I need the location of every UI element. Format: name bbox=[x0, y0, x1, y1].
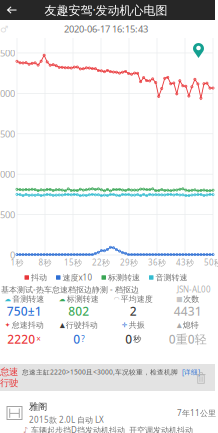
staticText: 29秒 bbox=[120, 257, 138, 268]
staticText: 秒 bbox=[133, 334, 141, 344]
staticText: 平均速度 bbox=[121, 294, 153, 304]
staticText: 2015款 2.0L 自动 LX bbox=[29, 414, 104, 425]
staticText: 怠速抖动 bbox=[12, 320, 44, 330]
staticText: 22秒 bbox=[92, 257, 110, 268]
staticText: 2 bbox=[130, 303, 137, 319]
staticText: 36秒 bbox=[148, 257, 166, 268]
staticText: 雅阁 bbox=[29, 401, 47, 412]
staticText: 共振 bbox=[129, 320, 145, 330]
staticText: ♪ bbox=[23, 425, 28, 433]
staticText: 802 bbox=[68, 303, 89, 319]
staticText: 43秒 bbox=[176, 257, 194, 268]
staticText: 友趣安驾·发动机心电图 bbox=[44, 2, 167, 18]
staticText: 怠速主缸2220>1500且<3000,车况较重，检查机脚 bbox=[22, 368, 178, 376]
button[interactable]: ▲ bbox=[51, 320, 106, 330]
staticText: 0重0轻 bbox=[169, 331, 207, 347]
staticText: 抖动 bbox=[31, 273, 47, 282]
staticText: 2000 bbox=[0, 87, 15, 100]
staticText: 1秒 bbox=[10, 257, 23, 268]
staticText: ☁ bbox=[59, 295, 66, 303]
staticText: 8秒 bbox=[38, 257, 51, 268]
button[interactable]: Delete bbox=[191, 366, 211, 390]
staticText: 4431 bbox=[174, 303, 202, 319]
staticText: 速度x10 bbox=[62, 272, 92, 283]
button[interactable]: [详细] bbox=[182, 368, 200, 376]
staticText: 2220 bbox=[7, 331, 35, 347]
staticText: 0 bbox=[125, 331, 132, 347]
staticText: 0 bbox=[10, 249, 15, 261]
staticText: 2020-06-17 16:15:43 bbox=[64, 23, 148, 35]
staticText: ? bbox=[81, 334, 84, 344]
button[interactable]: ☁ bbox=[51, 294, 106, 304]
staticText: 750±1 bbox=[7, 303, 42, 319]
staticText: 0 bbox=[73, 331, 80, 347]
button[interactable]: ▲ bbox=[160, 320, 215, 330]
staticText: [详细] bbox=[182, 368, 200, 376]
button[interactable]: ✦ bbox=[0, 320, 51, 330]
staticText: 2500 bbox=[0, 47, 15, 59]
staticText: × bbox=[36, 334, 41, 344]
staticText: 基本测试-热车怠速档抠边静测 - 档抠边 bbox=[1, 284, 139, 295]
staticText: ▲ bbox=[60, 321, 65, 329]
staticText: 15秒 bbox=[64, 257, 82, 268]
staticText: ▲ bbox=[177, 321, 182, 329]
staticText: 标测转速 bbox=[108, 273, 140, 282]
button[interactable]: Back bbox=[0, 0, 27, 20]
staticText: ▦ bbox=[176, 295, 182, 303]
button[interactable]: 雅阁 bbox=[6, 401, 216, 425]
staticText: ✦ bbox=[5, 321, 11, 329]
staticText: 音测转速 bbox=[155, 273, 187, 282]
staticText: ☁ bbox=[4, 295, 11, 303]
staticText: 50秒 bbox=[204, 257, 218, 268]
staticText: JSN-AL00 bbox=[177, 284, 211, 295]
staticText: ◠ bbox=[114, 295, 120, 303]
staticText: 500 bbox=[0, 208, 15, 221]
staticText: 行驶 bbox=[0, 377, 18, 389]
staticText: ♂ bbox=[0, 24, 8, 35]
button[interactable]: ◠ bbox=[106, 294, 160, 304]
button[interactable]: ✛ bbox=[106, 320, 160, 330]
staticText: 7年11公里 bbox=[177, 408, 216, 418]
staticText: 车辆起步挡D挡发动机抖动 开空调发动机抖动 bbox=[31, 425, 193, 433]
button[interactable]: ☁ bbox=[0, 294, 51, 304]
staticText: 行驶抖动 bbox=[66, 320, 98, 330]
staticText: 1000 bbox=[0, 168, 15, 180]
staticText: 标测转速 bbox=[67, 294, 99, 304]
staticText: 次数 bbox=[183, 294, 199, 304]
staticText: ✛ bbox=[122, 321, 128, 329]
staticText: 1500 bbox=[0, 128, 15, 140]
staticText: 音测转速 bbox=[12, 294, 44, 304]
staticText: 怠速 bbox=[0, 366, 18, 378]
staticText: 熄特 bbox=[183, 320, 199, 330]
button[interactable]: ▦ bbox=[160, 294, 215, 304]
